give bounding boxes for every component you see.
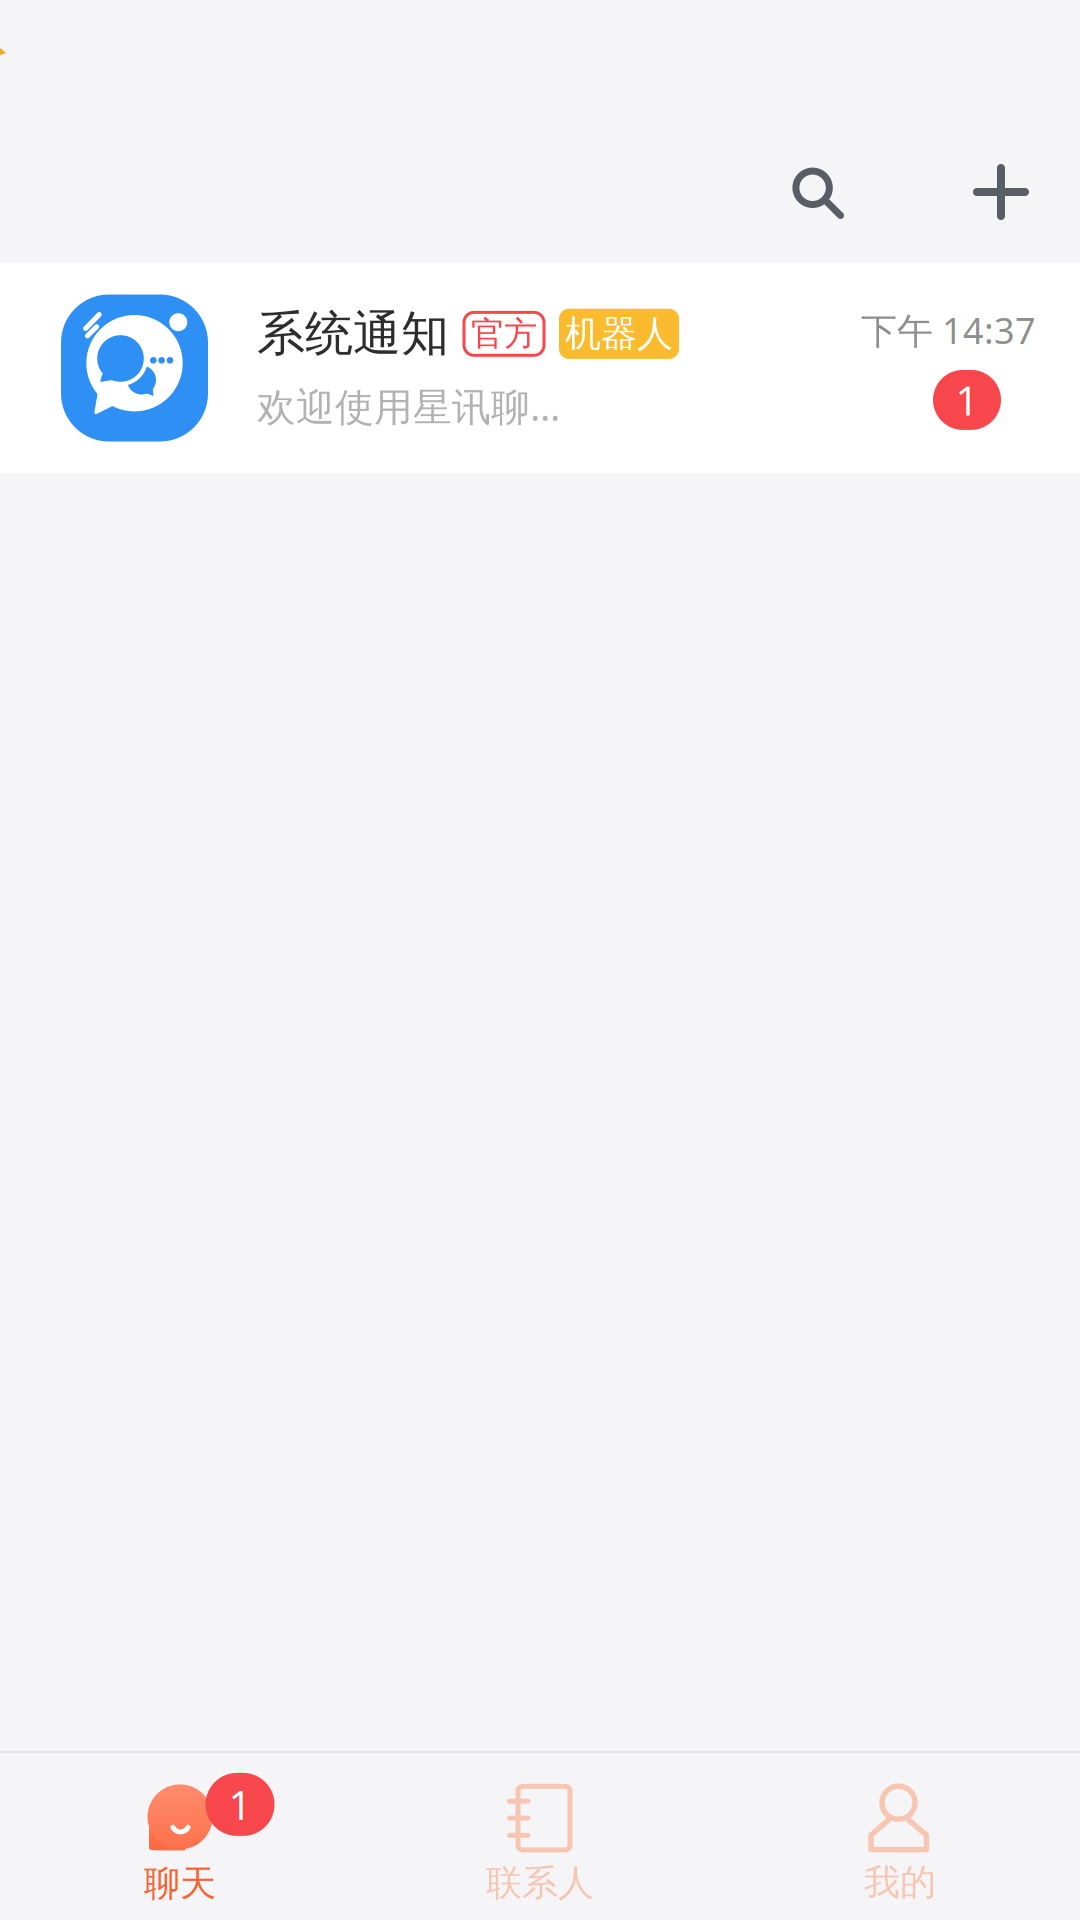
- button[interactable]: New chat: [946, 137, 1056, 247]
- staticText: 官方: [471, 313, 537, 354]
- staticText: 聊天: [144, 1861, 216, 1906]
- staticText: 1: [228, 1778, 251, 1831]
- button[interactable]: 系统通知: [0, 263, 1080, 473]
- staticText: 联系人: [486, 1861, 594, 1905]
- staticText: 欢迎使用星讯聊...: [257, 380, 560, 432]
- staticText: 1: [955, 373, 978, 426]
- staticText: 我的: [864, 1860, 936, 1905]
- button[interactable]: 联系人: [360, 1746, 720, 1920]
- button[interactable]: 我的: [720, 1746, 1080, 1920]
- staticText: 下午 14:37: [861, 306, 1036, 354]
- button[interactable]: Search: [762, 137, 872, 247]
- button[interactable]: 1: [0, 1745, 360, 1920]
- staticText: 机器人: [565, 312, 673, 356]
- staticText: 系统通知: [257, 304, 449, 363]
